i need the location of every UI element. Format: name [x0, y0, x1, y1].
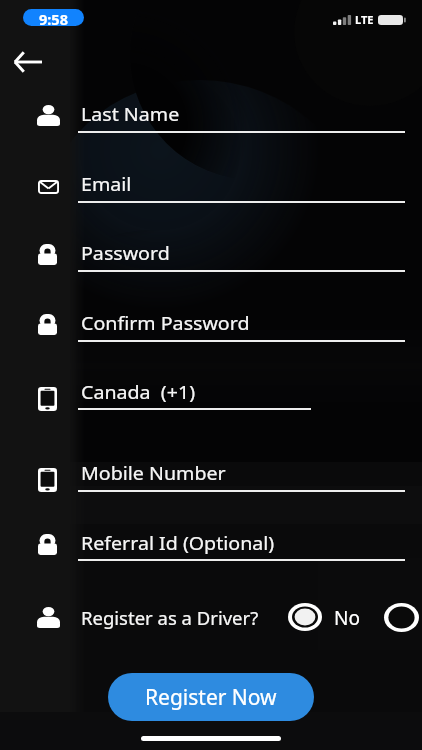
staticText: Email [81, 172, 132, 197]
staticText: Mobile Number [81, 461, 226, 486]
staticText: Register as a Driver? [81, 605, 259, 630]
staticText: Last Name [81, 102, 180, 127]
button[interactable]: Last Name [0, 102, 422, 146]
button[interactable]: Mobile Number [0, 461, 422, 505]
button[interactable]: No [286, 599, 324, 635]
button[interactable]: Confirm Password [0, 311, 422, 355]
staticText: LTE [355, 12, 374, 27]
button[interactable]: Email [0, 172, 422, 216]
staticText: No [334, 605, 360, 631]
button[interactable]: Password [0, 241, 422, 285]
button[interactable]: Referral Id (Optional) [0, 531, 422, 575]
staticText: Referral Id (Optional) [81, 531, 275, 556]
staticText: 9:58 [39, 9, 68, 26]
button[interactable]: Yes [382, 599, 420, 635]
staticText: Register Now [145, 683, 277, 712]
button[interactable]: Register Now [108, 673, 314, 721]
staticText: Password [81, 241, 170, 266]
button[interactable]: Back [2, 36, 54, 88]
staticText: Canada (+1) [81, 380, 195, 405]
button[interactable]: Canada (+1) [0, 380, 422, 424]
staticText: Confirm Password [81, 311, 250, 336]
